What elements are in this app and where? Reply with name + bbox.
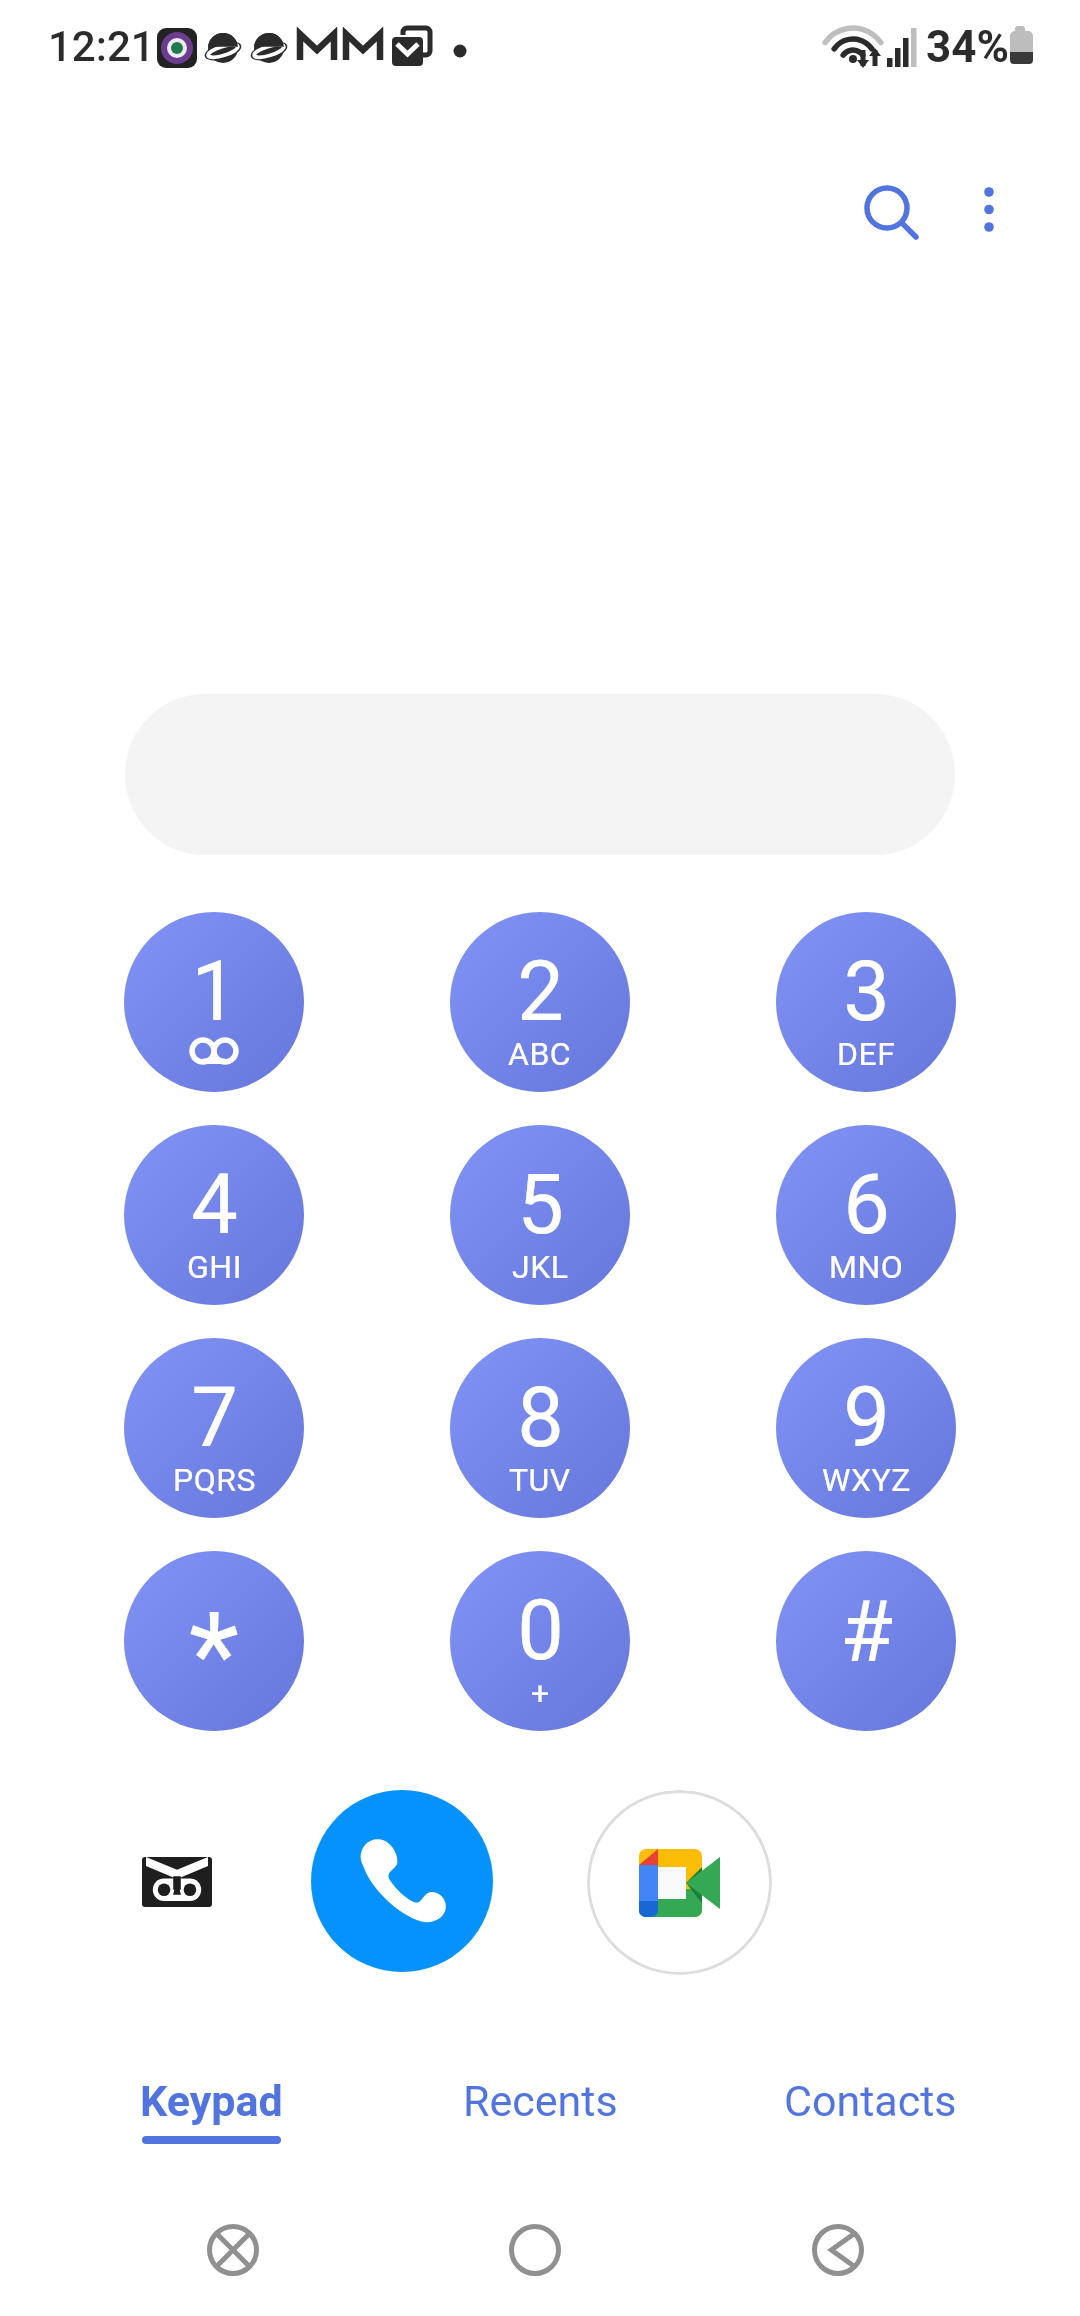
staticText: 4 [191, 1156, 238, 1253]
staticText: 8 [517, 1369, 564, 1466]
staticText: ABC [508, 1035, 572, 1073]
button[interactable]: 6 [776, 1125, 956, 1305]
button[interactable]: Video call [587, 1790, 772, 1975]
staticText: GHI [187, 1248, 242, 1286]
staticText: Contacts [784, 2076, 957, 2126]
staticText: WXYZ [822, 1461, 911, 1499]
button[interactable]: 4 [124, 1125, 304, 1305]
button[interactable]: Contacts [705, 2050, 1035, 2165]
staticText: MNO [829, 1248, 904, 1286]
staticText: Recents [463, 2076, 618, 2126]
staticText: 6 [843, 1156, 890, 1253]
staticText: * [189, 1587, 239, 1723]
staticText: 7 [191, 1369, 238, 1466]
staticText: 34% [926, 21, 1009, 73]
button[interactable]: 1 [124, 912, 304, 1092]
button[interactable]: 7 [124, 1338, 304, 1518]
button[interactable]: Back [778, 2190, 898, 2310]
staticText: 9 [843, 1369, 890, 1466]
staticText: JKL [512, 1248, 569, 1286]
button[interactable]: Call [311, 1790, 493, 1972]
staticText: 3 [843, 943, 890, 1040]
staticText: PQRS [173, 1461, 256, 1499]
button[interactable]: Home [475, 2190, 595, 2310]
staticText: 12:21 [48, 22, 155, 71]
staticText: + [531, 1674, 550, 1712]
button[interactable]: 5 [450, 1125, 630, 1305]
staticText: TUV [509, 1461, 571, 1499]
staticText: # [840, 1581, 893, 1682]
staticText: 0 [517, 1582, 564, 1679]
button[interactable]: Recents [375, 2050, 705, 2165]
staticText: 5 [517, 1156, 564, 1253]
button[interactable]: 8 [450, 1338, 630, 1518]
button[interactable]: # [776, 1551, 956, 1731]
staticText: Keypad [140, 2076, 283, 2126]
button[interactable]: Keypad [46, 2050, 376, 2165]
staticText: 1 [191, 943, 238, 1040]
button[interactable]: 9 [776, 1338, 956, 1518]
staticText: 2 [517, 943, 564, 1040]
button[interactable]: 2 [450, 912, 630, 1092]
button[interactable]: More options [934, 155, 1044, 265]
button[interactable]: Recent apps [173, 2190, 293, 2310]
button[interactable]: Search [832, 158, 942, 268]
staticText: DEF [837, 1035, 896, 1073]
button[interactable]: 3 [776, 912, 956, 1092]
button[interactable]: * [124, 1551, 304, 1731]
button[interactable]: 0 [450, 1551, 630, 1731]
button[interactable]: Voicemail [122, 1827, 232, 1937]
